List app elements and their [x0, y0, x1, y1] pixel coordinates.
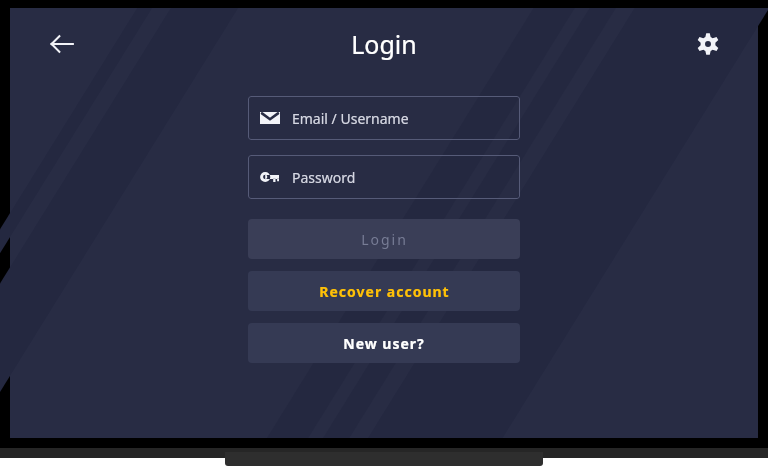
staticText: Login [351, 27, 417, 61]
staticText: New user? [343, 334, 425, 353]
button[interactable]: Settings [686, 22, 730, 66]
button[interactable]: Recover account [248, 271, 520, 311]
button[interactable]: Email / Username [248, 96, 520, 140]
button[interactable]: Login [248, 219, 520, 259]
staticText: Email / Username [292, 109, 409, 128]
button[interactable]: Password [248, 155, 520, 199]
staticText: Login [361, 230, 408, 249]
staticText: Recover account [319, 282, 450, 301]
button[interactable]: Back [38, 20, 86, 68]
staticText: Password [292, 168, 356, 187]
button[interactable]: New user? [248, 323, 520, 363]
